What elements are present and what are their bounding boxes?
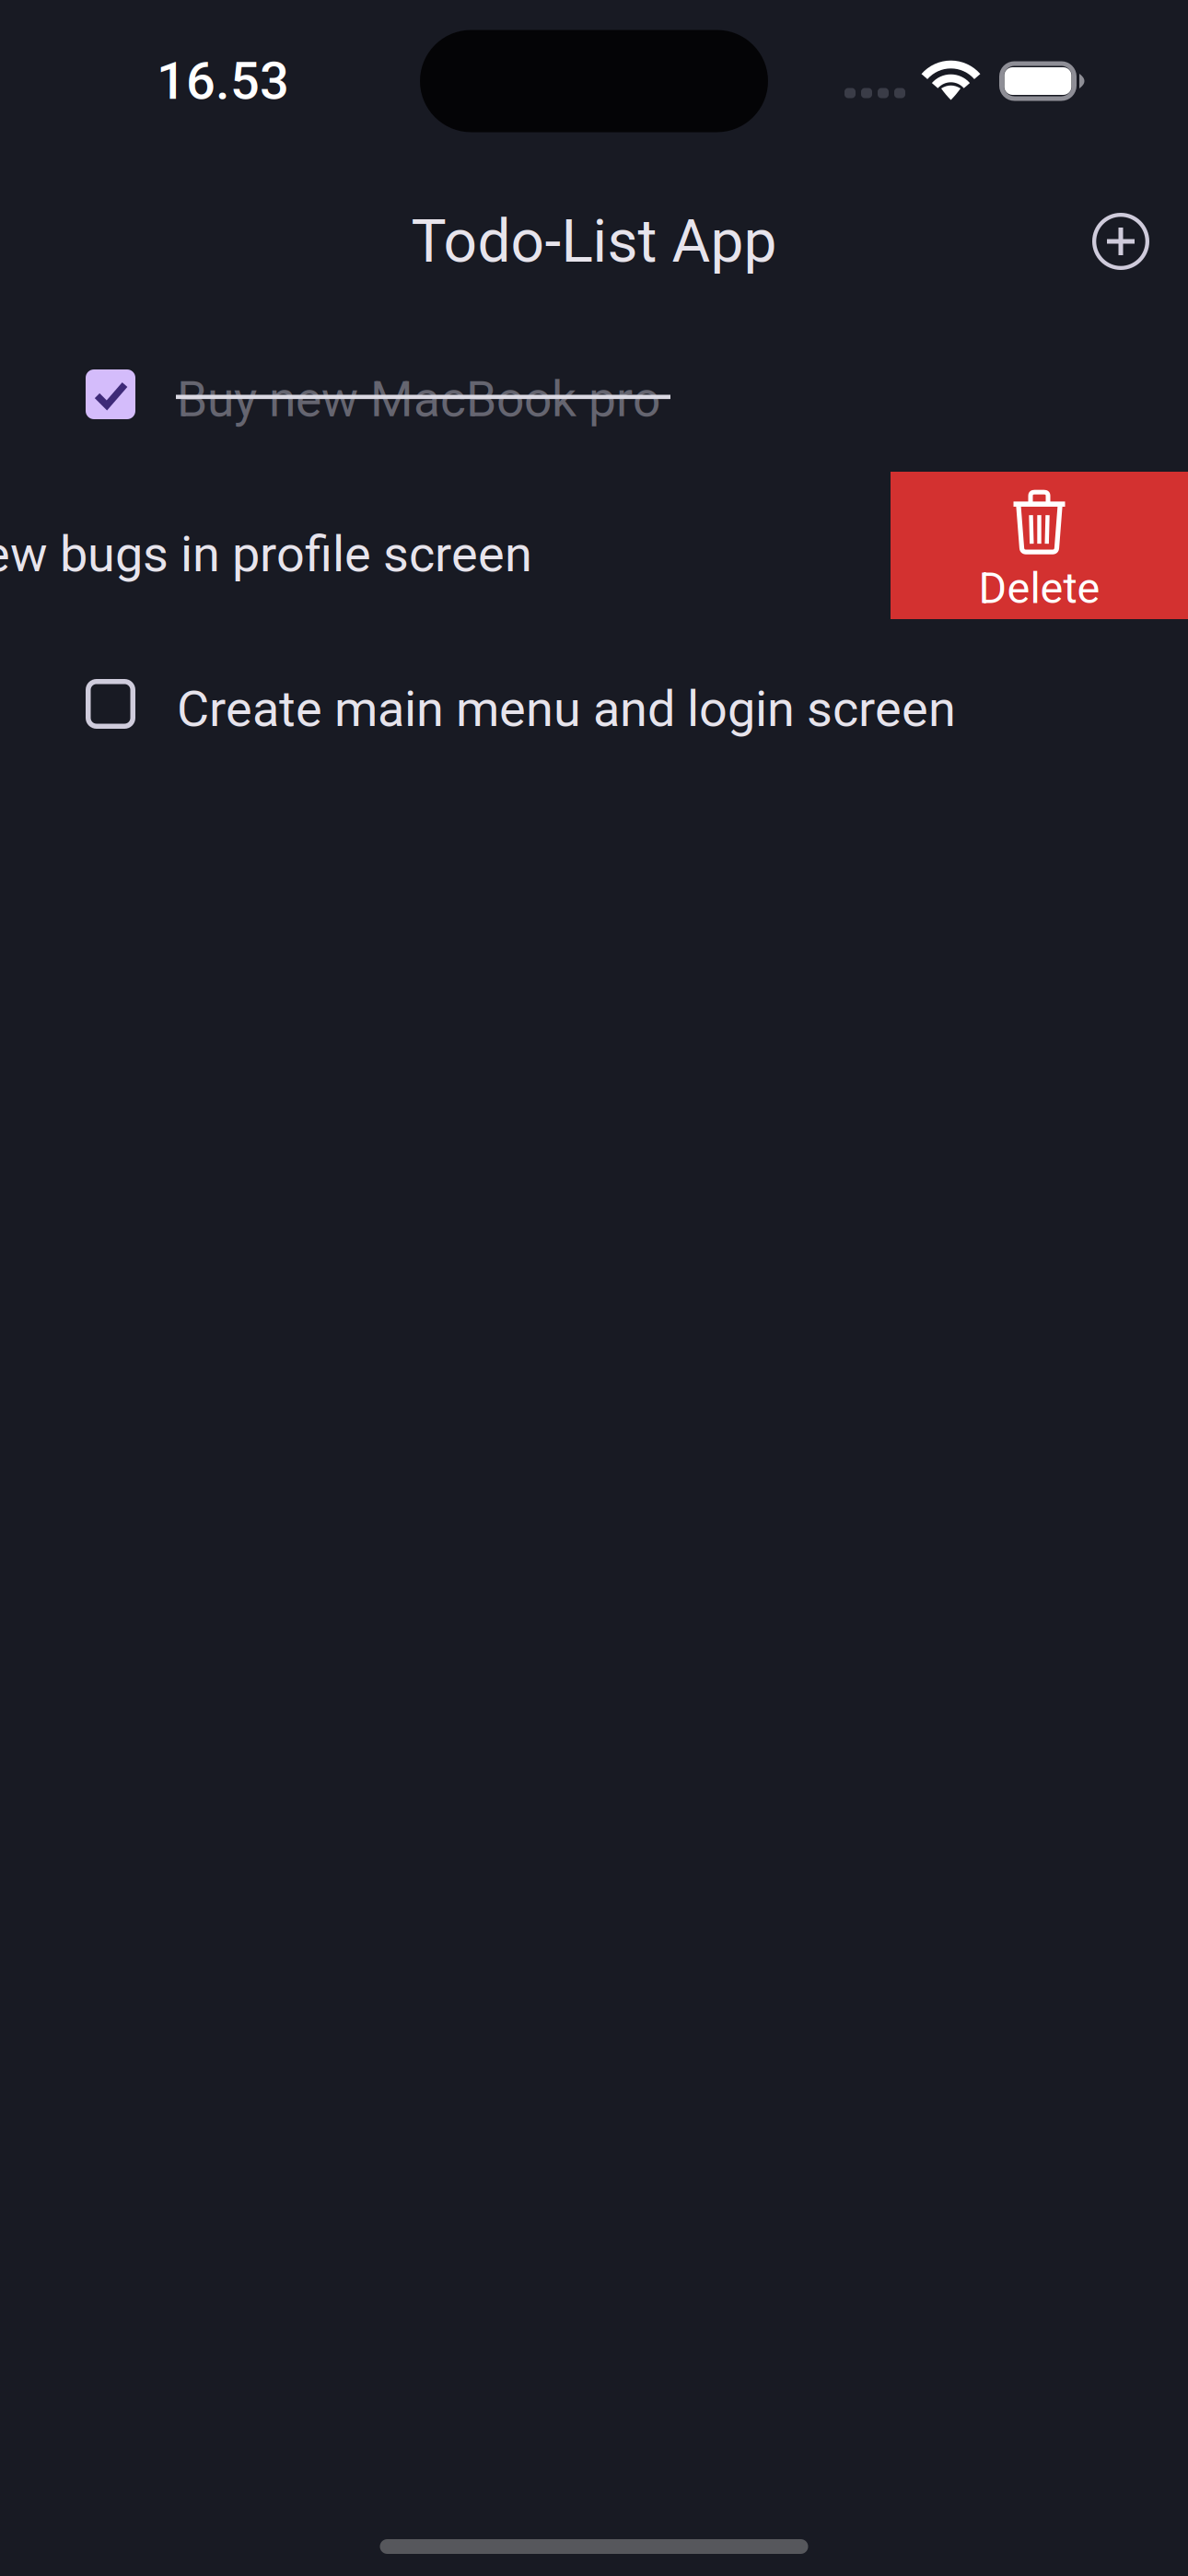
button[interactable]: Buy new MacBook pro: [0, 317, 1188, 472]
button[interactable]: Delete: [891, 472, 1188, 619]
staticText: Delete: [978, 563, 1100, 614]
button[interactable]: Add task: [1060, 181, 1182, 302]
staticText: Fix new bugs in profile screen: [0, 525, 532, 583]
staticText: Buy new MacBook pro: [177, 371, 660, 428]
staticText: Create main menu and login screen: [177, 680, 956, 738]
staticText: Todo-List App: [411, 207, 777, 276]
button[interactable]: Fix new bugs in profile screen: [0, 472, 1188, 626]
staticText: 16.53: [157, 51, 289, 111]
button[interactable]: Create main menu and login screen: [0, 626, 1188, 781]
